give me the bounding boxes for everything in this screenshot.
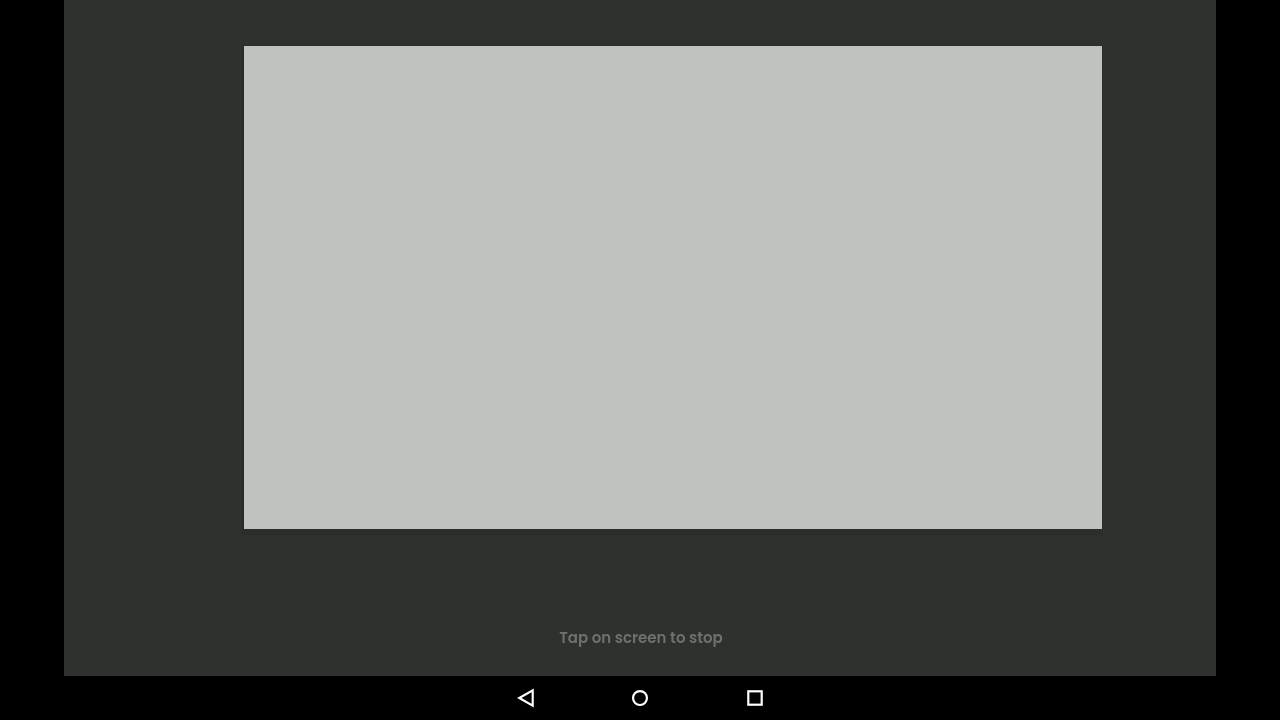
staticText: Tap on screen to stop	[65, 627, 1217, 648]
button[interactable]: Home	[616, 676, 664, 720]
button[interactable]: Back	[502, 676, 550, 720]
button[interactable]: Tap on screen to stop	[64, 0, 1216, 676]
button[interactable]: Recent apps	[731, 676, 779, 720]
